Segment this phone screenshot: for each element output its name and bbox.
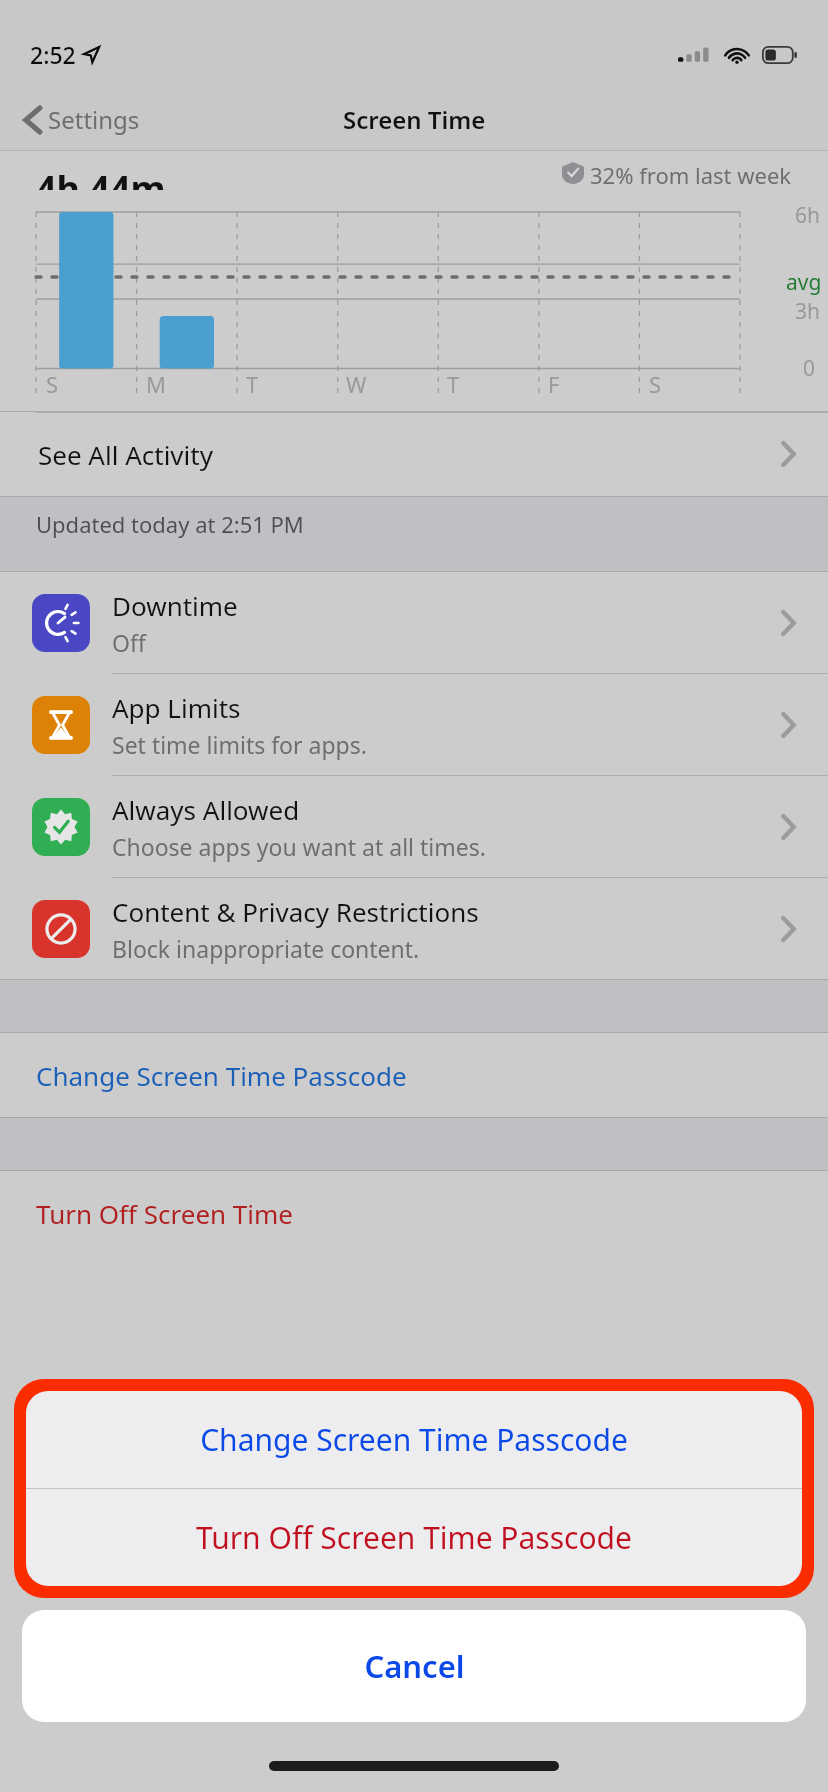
staticText: S [649, 369, 662, 399]
staticText: See All Activity [38, 437, 213, 472]
staticText: W [346, 369, 367, 399]
staticText: Updated today at 2:51 PM [36, 509, 304, 539]
button[interactable]: Downtime [0, 572, 828, 673]
staticText: 6h [795, 201, 820, 230]
button[interactable]: Always Allowed [0, 776, 828, 877]
staticText: Block inappropriate content. [112, 933, 420, 964]
button[interactable]: Cancel [22, 1610, 806, 1722]
staticText: avg [786, 268, 822, 297]
staticText: 32% from last week [590, 160, 792, 186]
button[interactable]: Content & Privacy Restrictions [0, 878, 828, 979]
staticText: Set time limits for apps. [112, 729, 367, 760]
staticText: App Limits [112, 690, 241, 725]
staticText: Change Screen Time Passcode [200, 1419, 628, 1460]
staticText: Always Allowed [112, 792, 300, 827]
staticText: Content & Privacy Restrictions [112, 894, 479, 929]
staticText: Turn Off Screen Time [36, 1196, 294, 1231]
staticText: 0 [803, 354, 816, 383]
button[interactable]: Turn Off Screen Time Passcode [26, 1489, 802, 1586]
staticText: S [46, 369, 59, 399]
staticText: T [447, 369, 460, 399]
staticText: Turn Off Screen Time Passcode [196, 1517, 632, 1558]
button[interactable]: Settings [16, 97, 148, 142]
button[interactable]: App Limits [0, 674, 828, 775]
button[interactable]: See All Activity [0, 412, 828, 496]
staticText: Choose apps you want at all times. [112, 831, 486, 862]
staticText: 4h 44m [36, 164, 166, 190]
staticText: Settings [48, 103, 140, 136]
staticText: M [146, 369, 166, 399]
staticText: Cancel [364, 1645, 465, 1687]
button[interactable]: Turn Off Screen Time [0, 1171, 828, 1255]
button[interactable]: Change Screen Time Passcode [0, 1033, 828, 1117]
staticText: F [548, 369, 560, 399]
staticText: Change Screen Time Passcode [36, 1058, 407, 1093]
button[interactable]: Change Screen Time Passcode [26, 1391, 802, 1488]
staticText: Off [112, 627, 146, 658]
staticText: Screen Time [343, 103, 486, 136]
staticText: T [246, 369, 259, 399]
staticText: Downtime [112, 588, 238, 623]
staticText: 2:52 [30, 39, 76, 70]
staticText: 3h [795, 297, 820, 326]
